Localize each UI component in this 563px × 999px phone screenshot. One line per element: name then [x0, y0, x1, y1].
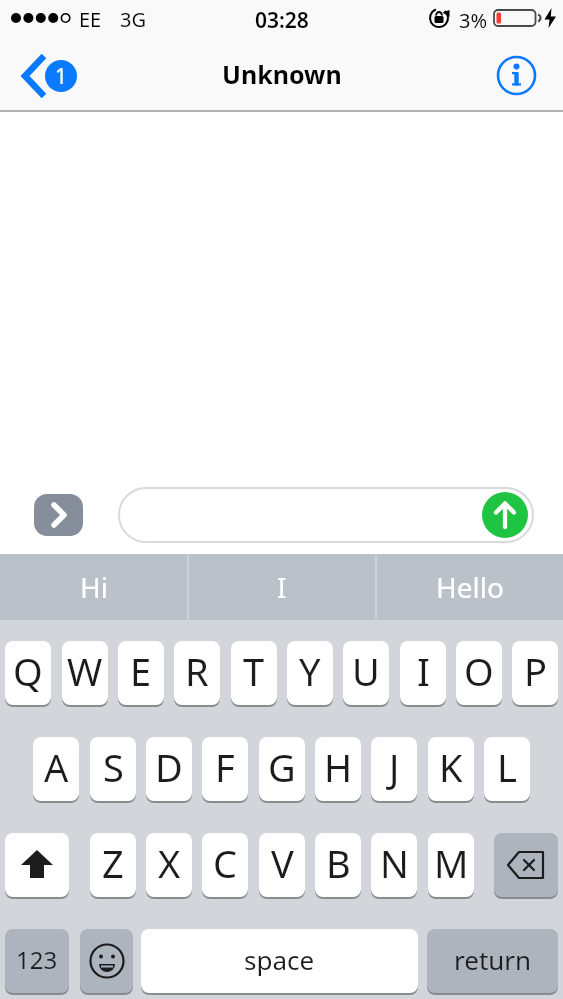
button[interactable]: V [259, 833, 305, 897]
button[interactable]: T [231, 641, 277, 705]
button[interactable]: P [512, 641, 558, 705]
staticText: Unknown [222, 57, 342, 91]
staticText: Y [299, 645, 321, 697]
staticText: 03:28 [255, 6, 309, 30]
staticText: return [454, 942, 532, 977]
button[interactable]: M [428, 833, 474, 897]
button[interactable]: H [315, 737, 361, 801]
staticText: G [268, 741, 296, 793]
staticText: Hi [80, 568, 108, 606]
staticText: space [244, 942, 315, 977]
button[interactable] [118, 487, 534, 543]
button[interactable]: N [371, 833, 417, 897]
staticText: C [213, 837, 238, 889]
button[interactable] [494, 53, 539, 98]
button[interactable]: W [62, 641, 108, 705]
button[interactable]: Q [5, 641, 51, 705]
staticText: Hello [436, 568, 504, 606]
staticText: P [524, 645, 547, 697]
button[interactable]: U [343, 641, 389, 705]
button[interactable]: B [315, 833, 361, 897]
button[interactable]: space [141, 929, 418, 993]
button[interactable]: X [146, 833, 192, 897]
staticText: F [215, 741, 235, 793]
staticText: J [389, 741, 400, 793]
staticText: Z [102, 837, 124, 889]
staticText: S [103, 741, 124, 793]
staticText: 1 [55, 62, 68, 91]
staticText: W [67, 645, 103, 697]
button[interactable]: 1 [16, 52, 86, 100]
button[interactable]: G [259, 737, 305, 801]
button[interactable] [482, 492, 528, 538]
button[interactable] [80, 929, 133, 993]
button[interactable] [5, 833, 69, 897]
staticText: A [44, 741, 69, 793]
button[interactable]: S [90, 737, 136, 801]
button[interactable]: R [174, 641, 220, 705]
button[interactable]: I [400, 641, 446, 705]
button[interactable]: K [428, 737, 474, 801]
button[interactable]: Hello [376, 554, 563, 620]
staticText: V [271, 837, 294, 889]
staticText: Q [13, 645, 43, 697]
staticText: N [380, 837, 409, 889]
button[interactable]: return [427, 929, 558, 993]
button[interactable]: D [146, 737, 192, 801]
staticText: K [439, 741, 463, 793]
staticText: E [130, 645, 152, 697]
staticText: 3% [459, 7, 488, 34]
button[interactable] [34, 494, 83, 536]
staticText: EE [79, 6, 102, 33]
button[interactable]: Y [287, 641, 333, 705]
staticText: X [158, 837, 181, 889]
staticText: I [417, 645, 430, 697]
button[interactable]: J [371, 737, 417, 801]
staticText: U [352, 645, 380, 697]
staticText: L [497, 741, 517, 793]
staticText: T [243, 645, 265, 697]
button[interactable]: A [33, 737, 79, 801]
button[interactable]: E [118, 641, 164, 705]
staticText: 3G [120, 6, 146, 33]
staticText: D [155, 741, 183, 793]
button[interactable]: C [202, 833, 248, 897]
staticText: H [324, 741, 353, 793]
staticText: O [464, 645, 494, 697]
button[interactable]: I [188, 554, 375, 620]
staticText: I [277, 568, 287, 606]
button[interactable] [494, 833, 558, 897]
button[interactable]: O [456, 641, 502, 705]
staticText: 123 [16, 943, 58, 976]
staticText: M [434, 837, 469, 889]
button[interactable]: Z [90, 833, 136, 897]
staticText: B [326, 837, 351, 889]
button[interactable]: 123 [5, 929, 69, 993]
button[interactable]: Hi [0, 554, 187, 620]
button[interactable]: F [202, 737, 248, 801]
button[interactable]: L [484, 737, 530, 801]
staticText: R [185, 645, 209, 697]
